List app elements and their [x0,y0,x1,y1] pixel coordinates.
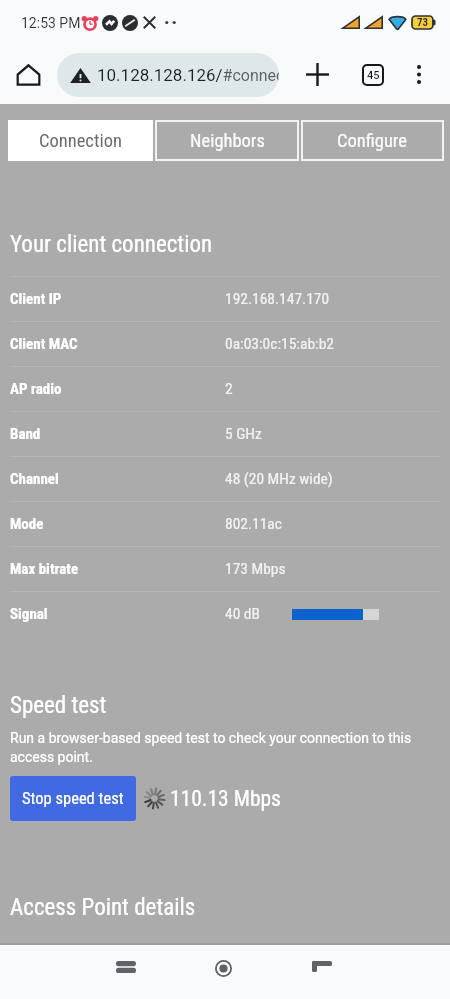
staticText: Channel [10,470,225,488]
staticText: Your client connection [10,231,213,258]
button[interactable]: 10.128.128.126/#connection [57,53,279,97]
button[interactable]: Stop speed test [10,776,136,821]
staticText: 12:53 PM [21,15,81,31]
staticText: Max bitrate [10,560,225,578]
button[interactable]: More options [390,45,447,104]
button[interactable]: Back [295,940,348,993]
staticText: 5 GHz [225,425,262,443]
staticText: 45 [367,69,380,82]
staticText: 173 Mbps [225,560,286,578]
staticText: Connection [39,130,122,152]
button[interactable]: Home [0,45,57,104]
button[interactable]: Tabs [355,45,390,104]
staticText: 0a:03:0c:15:ab:b2 [225,335,334,353]
staticText: Configure [337,130,408,152]
button[interactable]: Home [197,942,250,995]
staticText: Neighbors [190,130,265,152]
staticText: 192.168.147.170 [225,290,330,308]
staticText: Band [10,425,225,443]
staticText: Mode [10,515,225,533]
button[interactable]: Recent apps [99,940,152,993]
staticText: 73 [417,16,429,29]
button[interactable]: Neighbors [155,120,299,161]
button[interactable]: New tab [279,45,355,104]
staticText: Run a browser-based speed test to check … [10,730,415,765]
button[interactable]: Connection [8,120,153,161]
staticText: Speed test [10,692,107,719]
staticText: Client MAC [10,335,225,353]
staticText: 10.128.128.126/#connection [97,65,279,85]
staticText: 802.11ac [225,515,282,533]
staticText: Client IP [10,290,225,308]
staticText: 40 dB [225,605,261,623]
staticText: 48 (20 MHz wide) [225,470,333,488]
button[interactable]: Configure [301,120,444,161]
staticText: Stop speed test [22,789,124,808]
staticText: 2 [225,380,233,398]
staticText: Signal [10,605,225,623]
staticText: 110.13 Mbps [170,786,281,811]
staticText: Access Point details [10,894,196,921]
staticText: AP radio [10,380,225,398]
